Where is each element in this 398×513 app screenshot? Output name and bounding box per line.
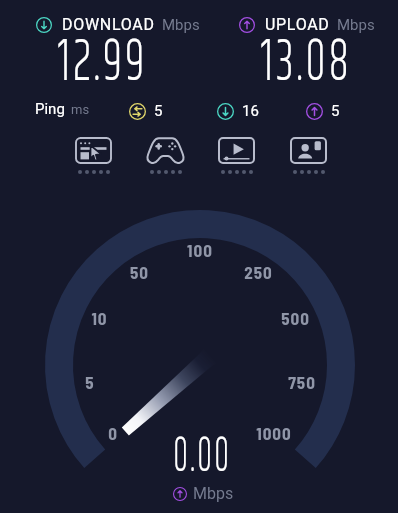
staticText: DOWNLOAD [62,15,155,34]
staticText: Mbps [162,16,200,34]
staticText: 100 [187,240,213,260]
staticText: 50 [130,262,149,282]
staticText: 750 [288,372,316,392]
staticText: 5 [331,102,340,120]
button[interactable]: Browsing [71,137,116,174]
staticText: 1000 [256,423,292,443]
staticText: 10 [91,308,108,328]
staticText: 16 [242,102,259,120]
button[interactable]: Video [214,137,259,174]
staticText: 250 [244,262,273,282]
staticText: Mbps [193,484,234,503]
staticText: Ping [35,100,65,118]
button[interactable]: Video call [286,137,331,174]
button[interactable]: Gaming [143,137,188,174]
staticText: 13.08 [261,17,352,110]
staticText: 0.00 [173,419,232,495]
staticText: 5 [85,372,95,392]
staticText: 0 [108,423,118,443]
staticText: Mbps [337,16,375,34]
staticText: 5 [154,102,163,120]
staticText: ms [71,102,90,117]
staticText: 12.99 [58,17,148,110]
staticText: 500 [281,308,310,328]
staticText: UPLOAD [265,15,330,34]
